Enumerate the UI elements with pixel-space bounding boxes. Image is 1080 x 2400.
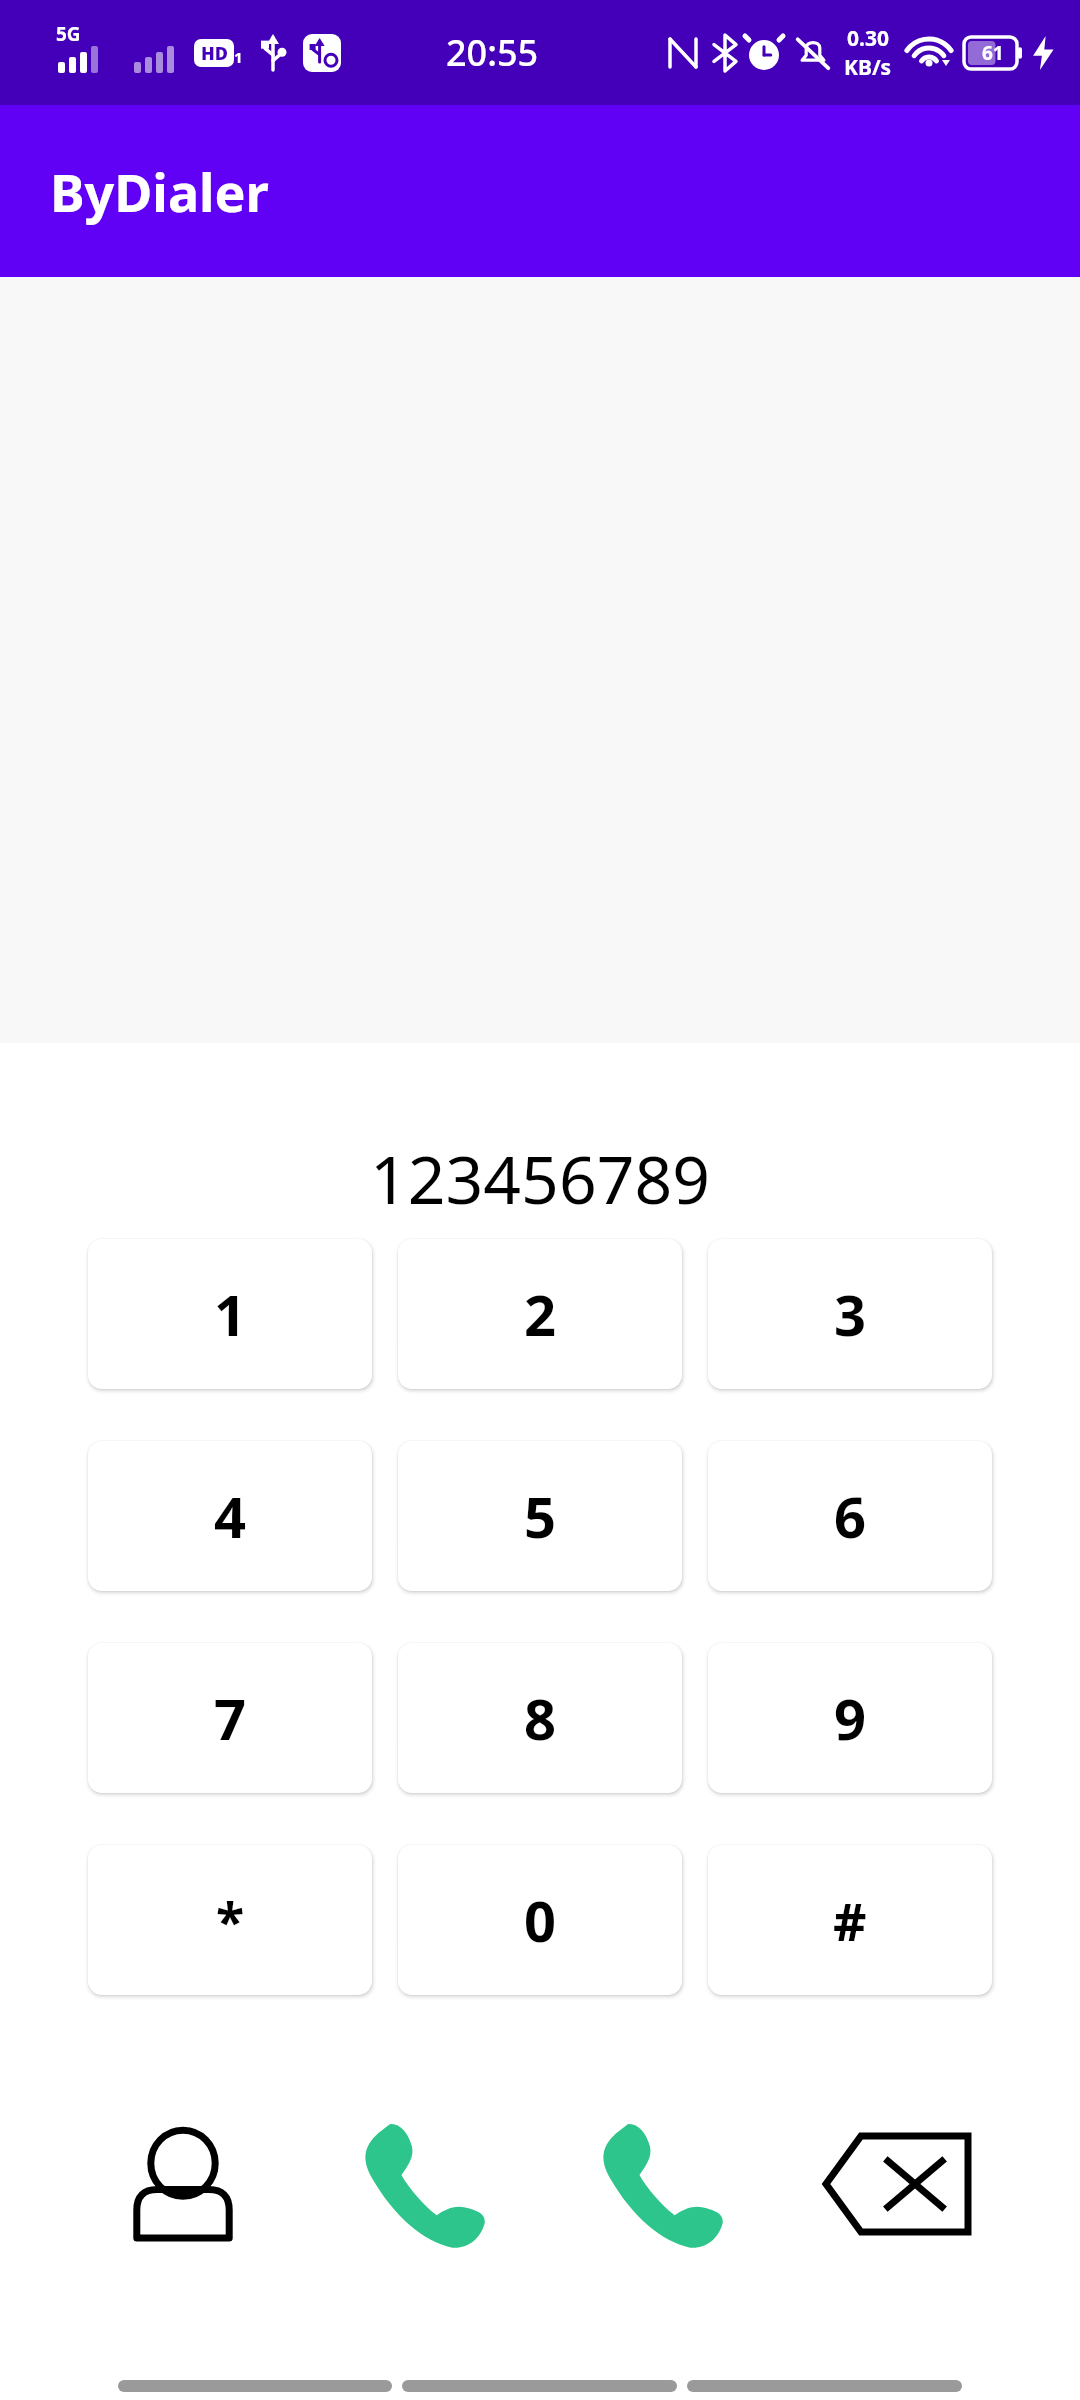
button[interactable]: Navigation button [687, 2380, 962, 2392]
staticText: 2 [524, 1276, 557, 1352]
button[interactable]: 1 [88, 1239, 372, 1389]
button[interactable]: 0 [398, 1845, 682, 1995]
button[interactable]: 5 [398, 1441, 682, 1591]
staticText: 1 [234, 47, 243, 67]
staticText: 0 [524, 1882, 557, 1958]
button[interactable]: ByDialer [0, 105, 1080, 277]
button[interactable]: 3 [708, 1239, 992, 1389]
button[interactable]: 8 [398, 1643, 682, 1793]
staticText: 5G [56, 21, 81, 47]
button[interactable]: 7 [88, 1643, 372, 1793]
staticText: KB/s [844, 53, 892, 82]
button[interactable]: Contacts [64, 2109, 302, 2259]
button[interactable]: Call SIM 1 [302, 2109, 540, 2259]
staticText: * [216, 1885, 245, 1956]
button[interactable]: * [88, 1845, 372, 1995]
button[interactable]: Call SIM 2 [540, 2109, 778, 2259]
button[interactable]: 4 [88, 1441, 372, 1591]
staticText: 8 [524, 1680, 557, 1756]
button[interactable]: 2 [398, 1239, 682, 1389]
button[interactable]: 6 [708, 1441, 992, 1591]
staticText: 0.30 [847, 24, 889, 53]
button[interactable]: Navigation button [118, 2380, 392, 2392]
button[interactable]: # [708, 1845, 992, 1995]
staticText: 7 [214, 1680, 247, 1756]
staticText: 20:55 [446, 28, 539, 77]
staticText: ByDialer [50, 156, 269, 227]
button[interactable]: Backspace [778, 2109, 1016, 2259]
staticText: 9 [834, 1680, 867, 1756]
button[interactable]: Navigation button [402, 2380, 677, 2392]
staticText: 1 [214, 1276, 247, 1352]
staticText: HD [201, 41, 228, 66]
staticText: 6 [834, 1478, 867, 1554]
staticText: 61 [982, 40, 1004, 66]
staticText: # [833, 1885, 867, 1956]
staticText: 3 [834, 1276, 867, 1352]
staticText: 123456789 [0, 1133, 1080, 1223]
staticText: 4 [214, 1478, 247, 1554]
button[interactable]: 9 [708, 1643, 992, 1793]
staticText: 5 [524, 1478, 557, 1554]
